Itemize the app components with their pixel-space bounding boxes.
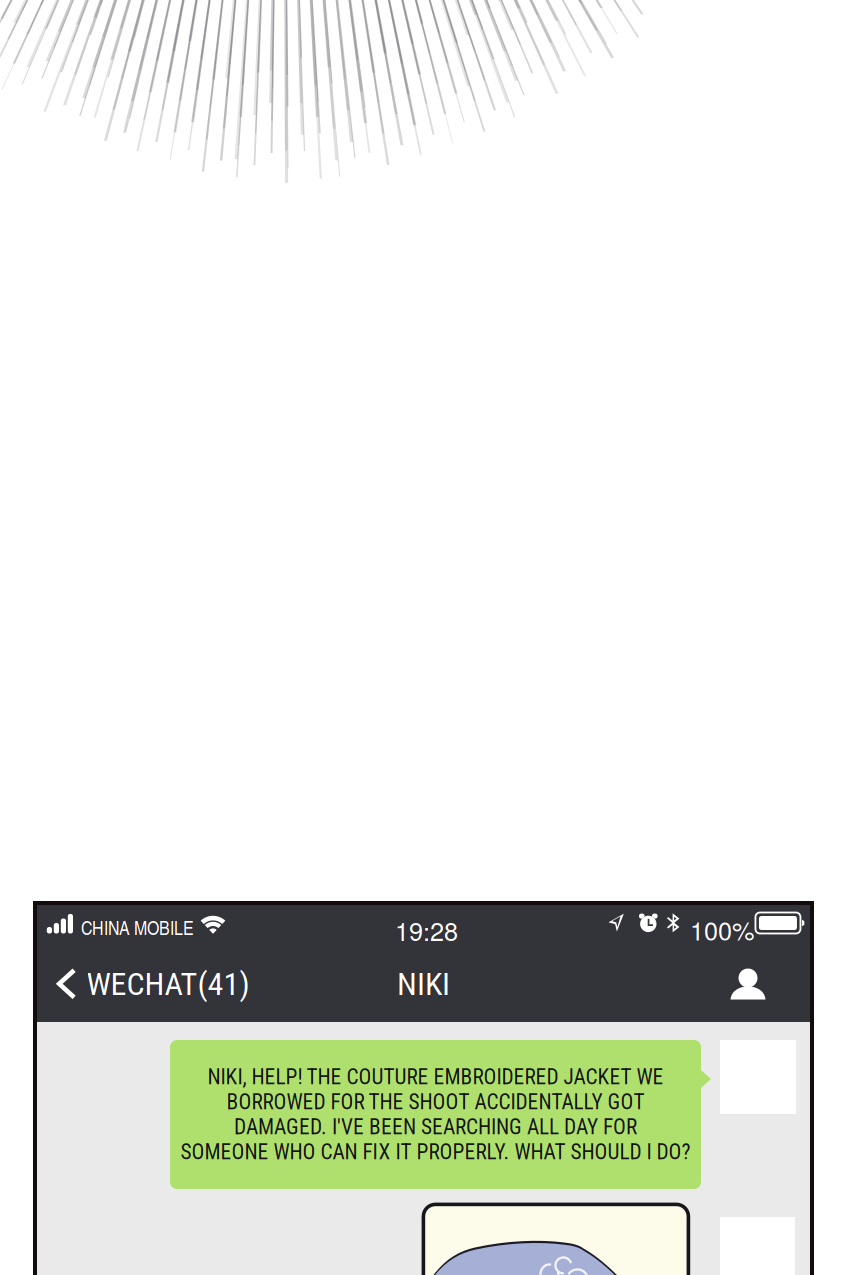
staticText: NIKI, HELP! THE COUTURE EMBROIDERED JACK… [207,1064,663,1089]
staticText: 19:28 [395,912,458,948]
staticText: SOMEONE WHO CAN FIX IT PROPERLY. WHAT SH… [180,1139,690,1164]
staticText: BORROWED FOR THE SHOOT ACCIDENTALLY GOT [226,1089,644,1114]
staticText: 100% [690,911,755,948]
button[interactable]: WECHAT(41) [55,955,265,1013]
staticText: CHINA MOBILE [81,914,194,940]
staticText: NIKI [397,965,450,1003]
button[interactable]: Contact profile [716,955,780,1013]
staticText: DAMAGED. I'VE BEEN SEARCHING ALL DAY FOR [234,1114,637,1139]
staticText: WECHAT(41) [86,965,249,1003]
